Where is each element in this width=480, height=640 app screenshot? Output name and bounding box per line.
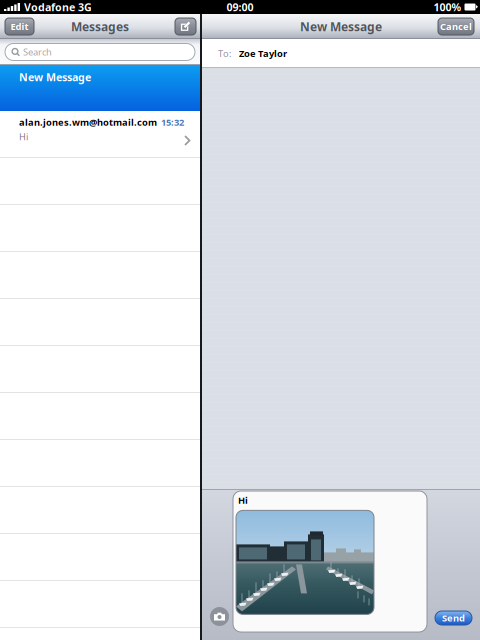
staticText: Vodafone 3G <box>24 0 92 14</box>
staticText: Cancel <box>440 20 472 33</box>
button[interactable]: Compose <box>175 18 196 35</box>
button[interactable]: Camera <box>210 607 229 626</box>
button[interactable]: Send <box>435 611 472 625</box>
button[interactable]: alan.jones.wm@hotmail.com <box>0 111 200 158</box>
staticText: To: <box>218 47 232 60</box>
staticText: Edit <box>10 20 28 33</box>
button[interactable]: Edit <box>5 18 34 35</box>
staticText: Send <box>442 612 465 624</box>
staticText: New Message <box>19 70 91 84</box>
staticText: Messages <box>71 18 129 34</box>
staticText: Search <box>23 46 52 58</box>
staticText: Hi <box>19 130 28 143</box>
staticText: alan.jones.wm@hotmail.com <box>19 116 157 128</box>
button[interactable]: Search <box>0 43 200 60</box>
staticText: 09:00 <box>226 0 253 14</box>
button[interactable]: New Message <box>0 65 200 111</box>
button[interactable]: Cancel <box>438 18 474 35</box>
staticText: 100% <box>433 0 461 14</box>
staticText: Zoe Taylor <box>239 47 287 60</box>
staticText: 15:32 <box>161 116 184 128</box>
staticText: Hi <box>238 494 248 506</box>
staticText: New Message <box>300 18 382 34</box>
